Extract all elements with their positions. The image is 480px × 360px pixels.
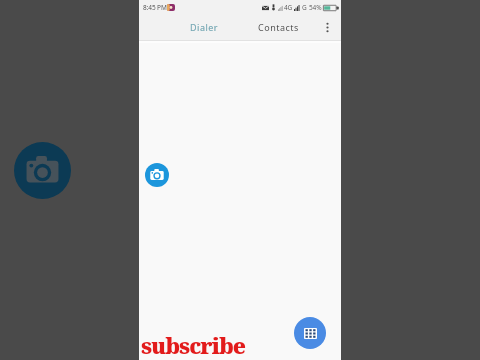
staticText: subscribe: [141, 330, 245, 360]
button[interactable]: Screen recorder: [145, 163, 169, 187]
staticText: Dialer: [190, 21, 219, 33]
button[interactable]: Dialer: [183, 16, 226, 38]
staticText: 54%: [309, 3, 322, 12]
other: Screen recorder: [14, 142, 71, 199]
staticText: 8:45 PM: [143, 3, 167, 12]
button[interactable]: More options: [316, 16, 338, 38]
staticText: G: [302, 3, 307, 12]
button[interactable]: Open dialpad: [294, 317, 326, 349]
button[interactable]: Contacts: [251, 16, 306, 38]
staticText: 4G: [284, 3, 293, 12]
staticText: Contacts: [258, 21, 299, 33]
